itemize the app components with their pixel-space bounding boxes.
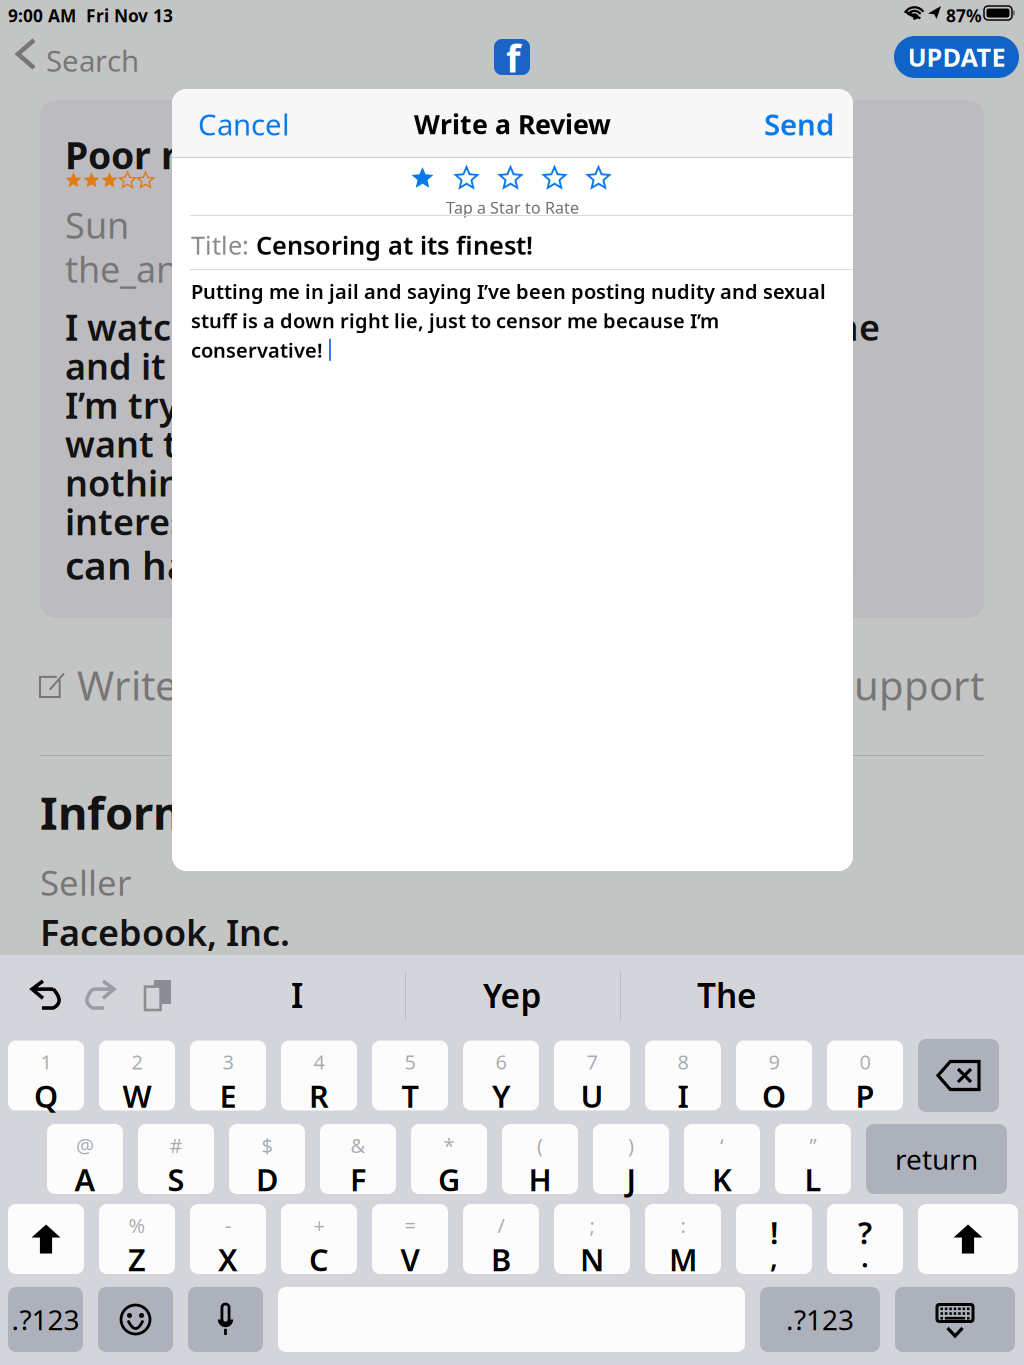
staticText: Q bbox=[34, 1075, 58, 1116]
button[interactable]: ( bbox=[502, 1124, 578, 1194]
staticText: / bbox=[497, 1212, 504, 1239]
staticText: 5 bbox=[404, 1048, 415, 1075]
staticText: J bbox=[626, 1159, 635, 1200]
button[interactable]: Rate 1 star bbox=[411, 167, 434, 190]
staticText: ? bbox=[858, 1212, 872, 1253]
staticText: 1 bbox=[40, 1048, 51, 1075]
button[interactable]: & bbox=[320, 1124, 396, 1194]
button[interactable]: # bbox=[138, 1124, 214, 1194]
button[interactable]: + bbox=[281, 1204, 357, 1274]
staticText: Poor moderation bbox=[65, 130, 378, 180]
button[interactable]: Rate 4 stars bbox=[543, 167, 566, 190]
staticText: R bbox=[309, 1075, 329, 1116]
staticText: Information bbox=[40, 782, 315, 842]
button[interactable]: / bbox=[463, 1204, 539, 1274]
staticText: f bbox=[506, 33, 520, 83]
staticText: * bbox=[443, 1132, 454, 1159]
staticText: nothing happens at all and I get no resp… bbox=[65, 459, 850, 506]
button[interactable]: .?123 bbox=[8, 1287, 83, 1352]
staticText: Sun bbox=[65, 201, 129, 249]
button[interactable]: ‘ bbox=[684, 1124, 760, 1194]
button[interactable]: % bbox=[99, 1204, 175, 1274]
button[interactable]: $ bbox=[229, 1124, 305, 1194]
button[interactable]: .?123 bbox=[760, 1287, 880, 1352]
staticText: 4 bbox=[313, 1048, 324, 1075]
button[interactable]: @ bbox=[47, 1124, 123, 1194]
button[interactable]: Yep bbox=[407, 965, 617, 1025]
button[interactable]: I bbox=[207, 965, 387, 1025]
staticText: M bbox=[669, 1239, 697, 1280]
button[interactable]: App Support bbox=[746, 658, 984, 711]
button[interactable]: 7 bbox=[554, 1040, 630, 1110]
button[interactable]: Hide Keyboard bbox=[895, 1287, 1015, 1352]
button[interactable]: ! bbox=[736, 1204, 812, 1274]
staticText: I bbox=[677, 1075, 688, 1116]
button[interactable]: : bbox=[645, 1204, 721, 1274]
staticText: Facebook, Inc. bbox=[40, 908, 290, 956]
staticText: G bbox=[438, 1159, 460, 1200]
button[interactable]: 9 bbox=[736, 1040, 812, 1110]
button[interactable]: ? bbox=[827, 1204, 903, 1274]
staticText: ( bbox=[537, 1132, 543, 1159]
button[interactable]: Rate 3 stars bbox=[499, 167, 522, 190]
button[interactable]: Backspace bbox=[918, 1039, 999, 1112]
button[interactable]: Shift bbox=[918, 1204, 1018, 1274]
staticText: conservative! bbox=[191, 337, 323, 363]
staticText: ‘ bbox=[720, 1132, 724, 1159]
staticText: W bbox=[122, 1075, 151, 1116]
staticText: ) bbox=[628, 1132, 634, 1159]
staticText: D bbox=[256, 1159, 278, 1200]
staticText: I bbox=[291, 973, 303, 1017]
staticText: return bbox=[895, 1140, 978, 1178]
staticText: S bbox=[167, 1159, 184, 1200]
staticText: Send bbox=[764, 104, 834, 143]
button[interactable]: ) bbox=[593, 1124, 669, 1194]
staticText: : bbox=[680, 1212, 685, 1239]
staticText: Censoring at its finest! bbox=[256, 228, 533, 262]
button[interactable]: 4 bbox=[281, 1040, 357, 1110]
button[interactable]: Emoji bbox=[98, 1287, 173, 1352]
button[interactable]: 2 bbox=[99, 1040, 175, 1110]
button[interactable]: Paste bbox=[135, 970, 181, 1020]
button[interactable]: Shift bbox=[8, 1204, 84, 1274]
button[interactable]: 6 bbox=[463, 1040, 539, 1110]
staticText: U bbox=[580, 1075, 603, 1116]
button[interactable]: Rate 5 stars bbox=[587, 167, 610, 190]
button[interactable]: = bbox=[372, 1204, 448, 1274]
staticText: Search bbox=[46, 41, 139, 80]
staticText: 2 bbox=[131, 1048, 142, 1075]
button[interactable]: Undo bbox=[21, 971, 67, 1018]
button[interactable]: 5 bbox=[372, 1040, 448, 1110]
staticText: and it makes me wonder how or why for bbox=[65, 342, 772, 390]
staticText: UPDATE bbox=[907, 40, 1005, 74]
button[interactable]: 3 bbox=[190, 1040, 266, 1110]
staticText: 0 bbox=[859, 1048, 870, 1075]
button[interactable]: Rate 2 stars bbox=[455, 167, 478, 190]
button[interactable]: Dictation bbox=[188, 1287, 263, 1352]
button[interactable]: 0 bbox=[827, 1040, 903, 1110]
staticText: Z bbox=[128, 1239, 146, 1280]
button[interactable]: Cancel bbox=[190, 100, 298, 148]
staticText: $ bbox=[261, 1132, 272, 1159]
button[interactable]: - bbox=[190, 1204, 266, 1274]
button[interactable]: ” bbox=[775, 1124, 851, 1194]
button[interactable]: return bbox=[866, 1124, 1007, 1194]
button[interactable]: 8 bbox=[645, 1040, 721, 1110]
staticText: 7 bbox=[586, 1048, 597, 1075]
button[interactable]: Send bbox=[744, 100, 834, 148]
staticText: I’m trying to understand what is going bbox=[65, 381, 741, 429]
staticText: , bbox=[770, 1238, 778, 1275]
staticText: 6 bbox=[495, 1048, 506, 1075]
button[interactable]: Redo bbox=[79, 971, 125, 1018]
button[interactable]: 1 bbox=[8, 1040, 84, 1110]
button[interactable]: Search bbox=[0, 30, 160, 78]
button[interactable]: The bbox=[622, 965, 832, 1025]
staticText: + bbox=[313, 1212, 324, 1239]
button[interactable]: ; bbox=[554, 1204, 630, 1274]
staticText: P bbox=[855, 1075, 874, 1116]
staticText: L bbox=[804, 1159, 821, 1200]
button[interactable]: * bbox=[411, 1124, 487, 1194]
button[interactable]: Write a Review bbox=[40, 658, 350, 711]
button[interactable]: UPDATE bbox=[894, 36, 1019, 78]
